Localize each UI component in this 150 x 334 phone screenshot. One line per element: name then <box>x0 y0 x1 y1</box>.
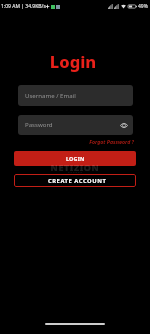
staticText: Password <box>25 120 53 128</box>
staticText: Login <box>0 50 148 72</box>
staticText: LOGIN <box>66 155 85 162</box>
staticText: NETIZION <box>0 161 150 173</box>
button[interactable]: Show password <box>118 119 130 131</box>
staticText: Username / Email <box>25 91 76 99</box>
button[interactable]: LOGIN <box>14 151 136 166</box>
button[interactable]: CREATE ACCOUNT <box>14 174 136 187</box>
staticText: CREATE ACCOUNT <box>48 177 107 185</box>
button[interactable]: Forgot Password ? <box>0 138 134 145</box>
button[interactable]: Password <box>18 115 133 135</box>
staticText: • • • • • • <box>0 170 150 175</box>
staticText: 49% <box>138 3 148 10</box>
staticText: 1:09 AM | 34.9KB/s <box>1 3 46 10</box>
button[interactable]: Username / Email <box>18 85 133 106</box>
